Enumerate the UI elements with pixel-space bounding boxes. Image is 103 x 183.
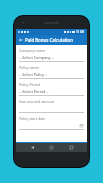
staticText: -- Select Period --	[19, 89, 49, 94]
staticText: 11:03	[76, 30, 85, 34]
button[interactable]: Recents	[68, 144, 75, 151]
staticText: Company name	[19, 48, 45, 53]
staticText: Policy start date	[19, 116, 46, 121]
button[interactable]: Home	[48, 144, 55, 151]
staticText: Paid Bonus Calculation	[25, 37, 73, 43]
button[interactable]: Pick date	[79, 123, 84, 128]
staticText: Policy Period	[19, 82, 41, 87]
staticText: -- Select Policy --	[19, 72, 48, 77]
button[interactable]: Company name	[19, 48, 84, 65]
button[interactable]: Sum assured amount	[19, 99, 84, 116]
staticText: Policy name	[19, 65, 39, 70]
staticText: Sum assured amount	[19, 99, 55, 104]
button[interactable]: Policy start date	[19, 116, 84, 133]
button[interactable]: Back	[29, 144, 36, 151]
button[interactable]: Policy Period	[19, 82, 84, 99]
button[interactable]: Back	[18, 37, 24, 43]
button[interactable]: Back	[16, 35, 87, 45]
staticText: -- Select Company --	[19, 55, 54, 60]
button[interactable]: Policy name	[19, 65, 84, 82]
